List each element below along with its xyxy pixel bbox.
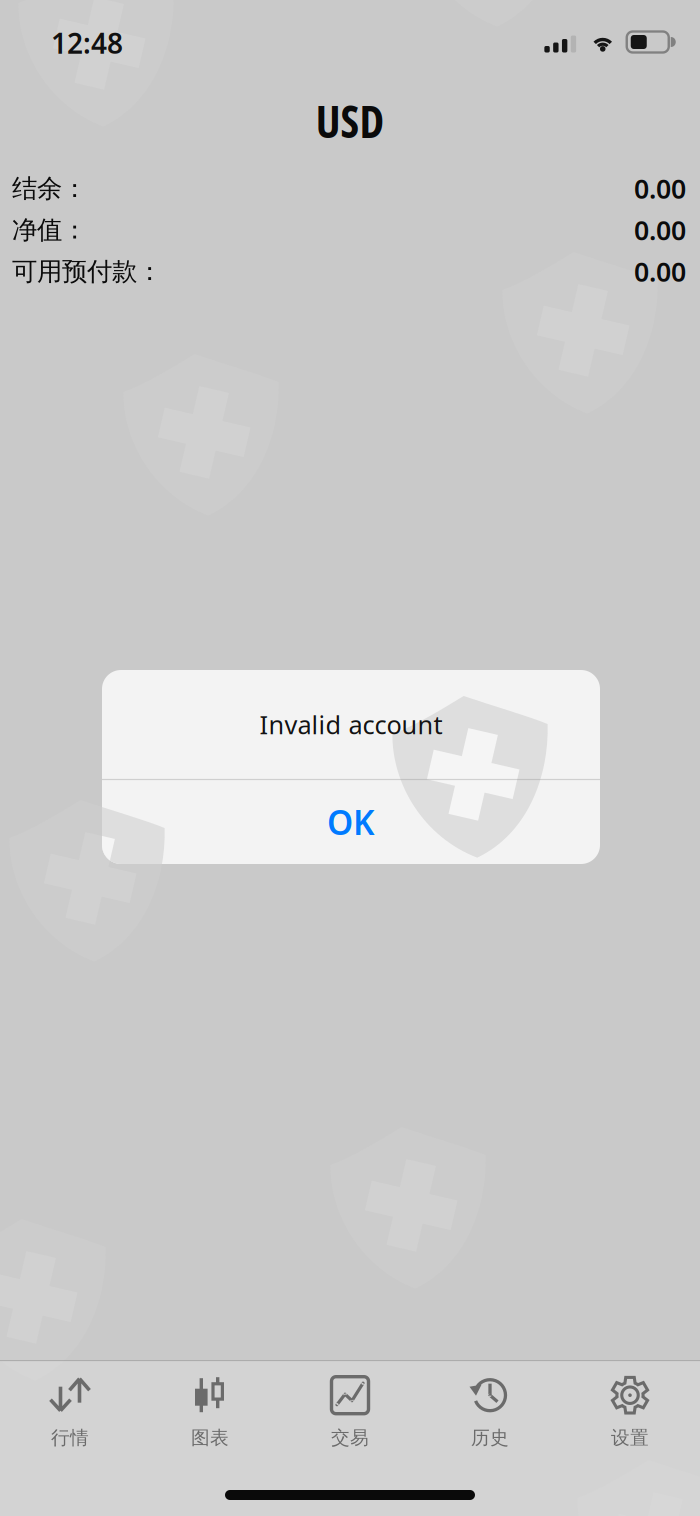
staticText: USD xyxy=(315,91,384,151)
staticText: 0.00 xyxy=(634,212,686,248)
staticText: 设置 xyxy=(611,1426,649,1449)
staticText: 图表 xyxy=(191,1426,229,1449)
staticText: 交易 xyxy=(331,1426,369,1449)
button[interactable]: 历史 xyxy=(420,1361,560,1457)
staticText: 0.00 xyxy=(634,254,686,289)
staticText: 12:48 xyxy=(51,24,123,62)
staticText: Invalid account xyxy=(259,708,442,741)
button[interactable]: 图表 xyxy=(140,1361,280,1457)
staticText: 行情 xyxy=(51,1426,89,1449)
button[interactable]: 设置 xyxy=(560,1361,700,1457)
staticText: 历史 xyxy=(471,1426,509,1449)
staticText: 净值： xyxy=(12,214,87,245)
staticText: 结余： xyxy=(12,173,87,204)
button[interactable]: OK xyxy=(102,780,600,864)
button[interactable]: 交易 xyxy=(280,1361,420,1457)
staticText: 可用预付款： xyxy=(12,256,162,287)
staticText: OK xyxy=(327,800,375,844)
staticText: 0.00 xyxy=(634,171,686,206)
button[interactable]: 行情 xyxy=(0,1361,140,1457)
